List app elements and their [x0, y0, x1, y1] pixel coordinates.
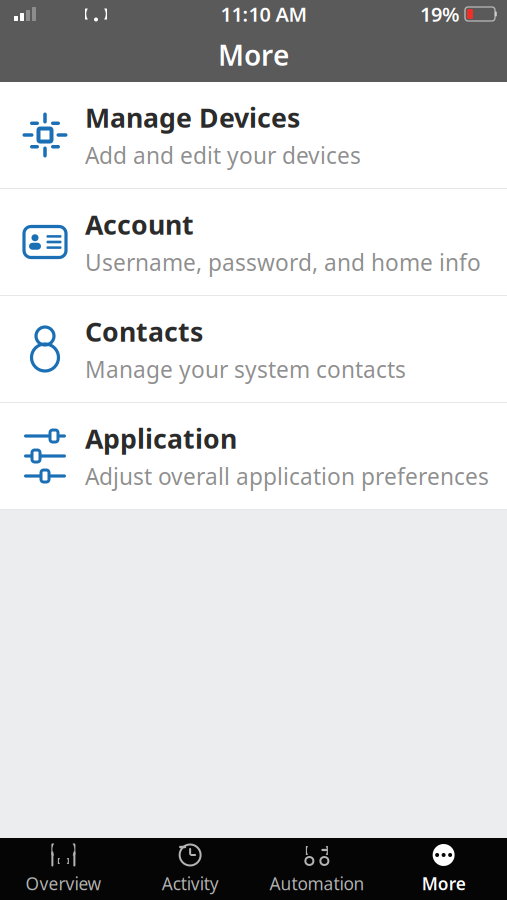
staticText: Activity [162, 872, 219, 895]
button[interactable]: Contacts [0, 296, 507, 403]
staticText: Adjust overall application preferences [85, 461, 489, 491]
staticText: Add and edit your devices [85, 140, 361, 170]
staticText: Overview [25, 872, 101, 895]
staticText: Application [85, 421, 237, 456]
staticText: Account [85, 207, 194, 242]
staticText: Manage your system contacts [85, 354, 406, 384]
button[interactable]: Activity [127, 838, 254, 900]
staticText: 11:10 AM [220, 1, 307, 27]
button[interactable]: Account [0, 189, 507, 296]
staticText: Automation [269, 872, 364, 895]
staticText: More [422, 872, 466, 895]
staticText: Contacts [85, 314, 203, 349]
button[interactable]: Overview [0, 838, 127, 900]
button[interactable]: Application [0, 403, 507, 510]
button[interactable]: Automation [253, 838, 380, 900]
button[interactable]: More [380, 838, 507, 900]
staticText: Manage Devices [85, 100, 300, 135]
button[interactable]: More [0, 28, 507, 82]
staticText: Username, password, and home info [85, 247, 481, 277]
staticText: More [218, 36, 289, 74]
staticText: 19% [420, 1, 460, 27]
button[interactable]: Manage Devices [0, 82, 507, 189]
